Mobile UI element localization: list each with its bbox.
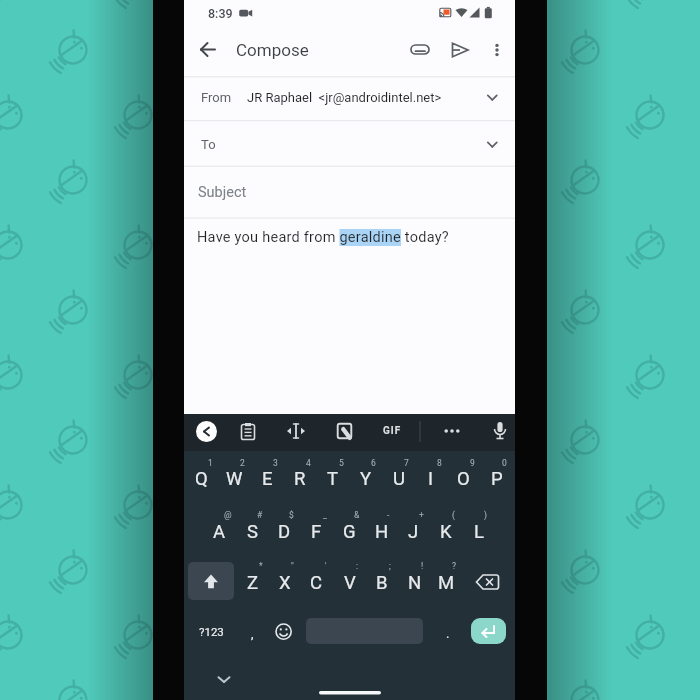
staticText: P — [491, 468, 503, 490]
staticText: G — [343, 521, 356, 543]
button[interactable]: GIF — [355, 417, 429, 445]
staticText: # — [257, 510, 263, 520]
button[interactable]: B — [350, 564, 413, 601]
staticText: _ — [323, 510, 327, 520]
button[interactable]: . — [419, 618, 476, 649]
button[interactable]: R — [268, 460, 331, 497]
button[interactable]: Have you heard from geraldine today? — [197, 226, 477, 248]
staticText: 2 — [240, 458, 245, 468]
staticText: O — [457, 468, 470, 490]
button[interactable]: N — [383, 564, 446, 601]
button[interactable]: C — [285, 564, 348, 601]
button[interactable]: G — [318, 513, 381, 550]
staticText: : — [356, 561, 359, 571]
staticText: 7 — [404, 458, 409, 468]
staticText: X — [279, 572, 291, 594]
button[interactable]: J — [382, 513, 445, 550]
button[interactable] — [438, 417, 466, 445]
button[interactable] — [486, 417, 514, 445]
staticText: ( — [452, 510, 455, 520]
staticText: M — [438, 572, 455, 594]
staticText: E — [262, 468, 273, 490]
staticText: Have you heard from geraldine today? — [197, 229, 449, 246]
button[interactable] — [184, 77, 515, 120]
staticText: 8 — [437, 458, 442, 468]
button[interactable]: A — [188, 513, 251, 550]
button[interactable] — [282, 417, 310, 445]
button[interactable]: X — [253, 564, 316, 601]
button[interactable] — [446, 36, 474, 64]
staticText: ?123 — [199, 625, 224, 638]
button[interactable]: K — [414, 513, 477, 550]
button[interactable]: D — [253, 513, 316, 550]
staticText: From — [201, 90, 232, 105]
staticText: V — [344, 572, 356, 594]
staticText: To — [201, 137, 216, 152]
button[interactable] — [194, 36, 222, 64]
staticText: S — [247, 521, 258, 543]
staticText: 9 — [470, 458, 475, 468]
staticText: D — [278, 521, 291, 543]
button[interactable]: E — [236, 460, 299, 497]
button[interactable]: U — [367, 460, 430, 497]
button[interactable]: F — [285, 513, 348, 550]
button[interactable]: ?123 — [166, 616, 256, 646]
staticText: " — [291, 561, 294, 571]
button[interactable] — [331, 417, 359, 445]
button[interactable]: M — [415, 564, 478, 601]
button[interactable]: V — [318, 564, 381, 601]
button[interactable]: S — [221, 513, 284, 550]
button[interactable]: I — [399, 460, 462, 497]
button[interactable]: T — [301, 460, 364, 497]
staticText: Compose — [236, 40, 309, 60]
button[interactable] — [406, 36, 434, 64]
button[interactable]: L — [447, 513, 510, 550]
button[interactable]: Y — [334, 460, 397, 497]
staticText: F — [311, 521, 322, 543]
staticText: Z — [247, 572, 259, 594]
staticText: 3 — [273, 458, 278, 468]
staticText: 4 — [306, 458, 311, 468]
staticText: ; — [389, 561, 391, 571]
button[interactable] — [473, 568, 503, 596]
staticText: Subject — [198, 184, 247, 201]
staticText: 1 — [208, 458, 213, 468]
staticText: T — [327, 468, 339, 490]
staticText: R — [294, 468, 306, 490]
staticText: Y — [360, 468, 372, 490]
staticText: , — [251, 626, 254, 641]
button[interactable]: O — [432, 460, 495, 497]
staticText: J — [408, 521, 419, 543]
staticText: A — [213, 521, 226, 543]
button[interactable] — [269, 618, 297, 644]
button[interactable]: W — [203, 460, 266, 497]
button[interactable]: P — [465, 460, 528, 497]
staticText: * — [259, 561, 263, 571]
staticText: & — [354, 510, 360, 520]
button[interactable] — [188, 562, 234, 600]
button[interactable] — [196, 421, 217, 442]
staticText: 5 — [339, 458, 344, 468]
button[interactable] — [234, 417, 262, 445]
button[interactable]: Q — [170, 460, 233, 497]
staticText: . — [446, 626, 450, 641]
button[interactable]: H — [350, 513, 413, 550]
staticText: GIF — [383, 425, 402, 437]
staticText: H — [375, 521, 389, 543]
button[interactable] — [483, 36, 511, 64]
button[interactable] — [184, 167, 515, 217]
button[interactable]: Z — [221, 564, 284, 601]
staticText: N — [408, 572, 422, 594]
button[interactable] — [210, 668, 238, 692]
staticText: JR Raphael <jr@androidintel.net> — [247, 90, 442, 105]
staticText: C — [310, 572, 323, 594]
staticText: L — [474, 521, 484, 543]
button[interactable] — [184, 121, 515, 165]
button[interactable]: , — [224, 618, 281, 649]
button[interactable] — [471, 618, 506, 644]
staticText: I — [428, 468, 434, 490]
staticText: $ — [289, 510, 294, 520]
staticText: ' — [325, 561, 327, 571]
staticText: K — [440, 521, 452, 543]
